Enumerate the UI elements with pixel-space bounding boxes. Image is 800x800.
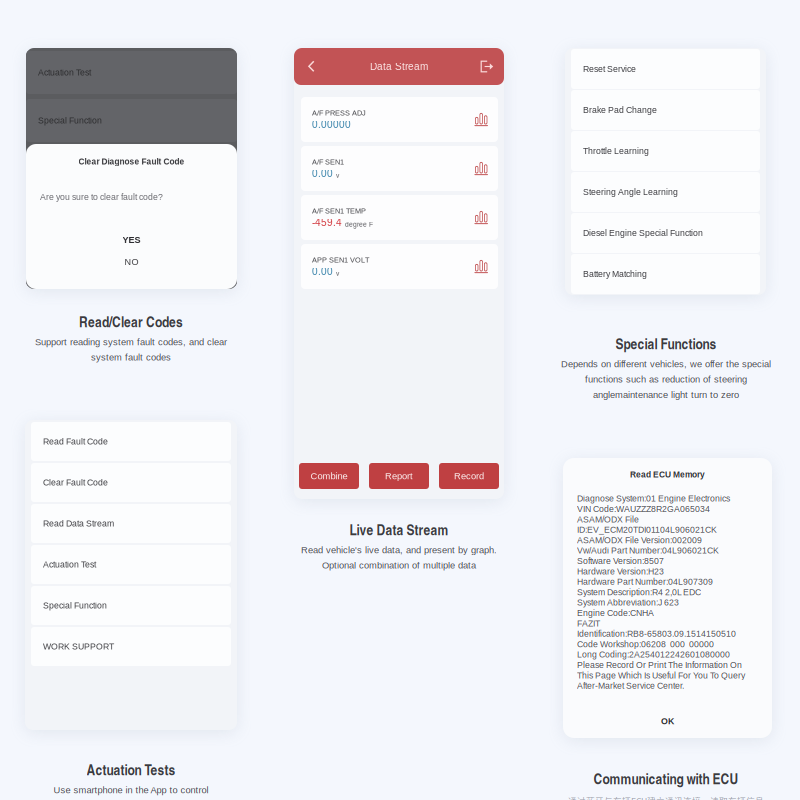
staticText: YES [122,235,140,245]
staticText: Report [385,471,413,481]
button[interactable]: A/F SEN1 [301,146,498,191]
staticText: Combine [310,471,347,481]
staticText: Special Function [43,601,107,610]
button[interactable]: Actuation Test [31,545,231,584]
staticText: 0.00000 [312,119,351,130]
button[interactable]: Diesel Engine Special Function [571,213,760,253]
button[interactable]: Actuation Test [26,51,237,94]
button[interactable]: YES [26,229,237,251]
staticText: v [336,172,339,179]
button[interactable]: Combine [299,463,359,489]
staticText: A/F SEN1 TEMP [312,207,366,215]
staticText: WORK SUPPORT [38,164,109,173]
button[interactable]: Back [294,48,328,85]
button[interactable]: Throttle Learning [571,131,760,171]
staticText: WORK SUPPORT [43,642,114,651]
button[interactable]: Read Fault Code [26,195,237,238]
button[interactable]: OK [563,709,772,733]
staticText: APP SEN1 VOLT [312,256,369,264]
staticText: Clear Fault Code [43,478,108,487]
staticText: Use smartphone in the App to control [53,785,208,795]
button[interactable]: WORK SUPPORT [31,627,231,666]
staticText: Hardware Version:H23 [577,566,664,576]
staticText: A/F SEN1 [312,158,344,166]
staticText: Long Coding:2A254012242601080000 [577,650,730,659]
button[interactable]: NO [26,251,237,273]
staticText: Diesel Engine Special Function [583,228,703,238]
staticText: degree F [345,221,373,228]
staticText: ASAM/ODX File Version:002009 [577,535,702,545]
staticText: After-Market Service Center. [577,681,684,691]
staticText: Identification:RB8-65803.09.1514150510 [577,629,736,639]
staticText: ASAM/ODX File [577,514,639,524]
staticText: Vw/Audi Part Number:04L906021CK [577,546,719,555]
staticText: Special Function [38,116,102,125]
button[interactable]: Report [369,463,429,489]
staticText: Reset Service [583,64,636,74]
button[interactable]: Special Function [26,99,237,142]
staticText: Depends on different vehicles, we offer … [561,359,771,369]
button[interactable]: Steering Angle Learning [571,172,760,212]
button[interactable]: Exit [470,48,504,85]
staticText: System Abbreviation:J 623 [577,598,679,607]
staticText: 通过蓝牙与车辆ECU建立通讯连接，读取车辆信息 [568,795,764,800]
staticText: Special Functions [615,333,716,354]
button[interactable]: Clear Fault Code [31,463,231,502]
staticText: anglemaintenance light turn to zero [593,390,739,400]
button[interactable]: A/F PRESS ADJ [301,97,498,142]
staticText: NO [124,257,138,267]
staticText: Steering Angle Learning [583,187,678,197]
button[interactable]: Reset Service [571,49,760,89]
staticText: Read Fault Code [43,437,108,446]
staticText: Please Record Or Print The Information O… [577,660,742,670]
staticText: Engine Code:CNHA [577,608,654,618]
staticText: -459.4 [312,217,342,228]
button[interactable]: Read Fault Code [31,422,231,461]
staticText: Hardware Part Number:04L907309 [577,577,713,587]
staticText: Code Workshop:06208 000 00000 [577,639,714,649]
staticText: Actuation Test [43,560,96,569]
staticText: Read ECU Memory [630,470,705,479]
staticText: Data Stream [370,61,428,72]
staticText: System Description:R4 2,0L EDC [577,587,701,597]
staticText: Read vehicle's live data, and present by… [301,545,497,555]
staticText: FAZIT [577,618,600,628]
button[interactable]: WORK SUPPORT [26,147,237,190]
staticText: Diagnose System:01 Engine Electronics [577,494,730,503]
button[interactable]: A/F SEN1 TEMP [301,195,498,240]
staticText: Live Data Stream [349,519,448,540]
staticText: Read Data Stream [43,519,114,528]
staticText: Software Version:8507 [577,556,664,566]
staticText: 0.00 [312,168,333,179]
staticText: Actuation Tests [86,759,175,780]
button[interactable]: Clear Fault Code [26,243,237,286]
staticText: Battery Matching [583,269,647,279]
staticText: ID:EV_ECM20TDI01104L906021CK [577,525,717,535]
button[interactable]: Record [439,463,499,489]
staticText: Optional combination of multiple data [322,560,476,570]
staticText: Support reading system fault codes, and … [35,337,227,347]
staticText: This Page Which Is Useful For You To Que… [577,670,745,680]
staticText: system fault codes [91,352,171,362]
staticText: Communicating with ECU [593,768,738,789]
staticText: Are you sure to clear fault code? [40,192,163,202]
button[interactable]: Read Data Stream [31,504,231,543]
staticText: Record [454,471,484,481]
staticText: 0.00 [312,266,333,277]
staticText: A/F PRESS ADJ [312,109,366,117]
staticText: VIN Code:WAUZZZ8R2GA065034 [577,504,710,514]
staticText: Actuation Test [38,68,91,77]
button[interactable]: APP SEN1 VOLT [301,244,498,289]
staticText: v [336,270,339,277]
staticText: functions such as reduction of steering [585,374,747,384]
staticText: Throttle Learning [583,146,649,156]
staticText: OK [661,716,674,726]
staticText: Read/Clear Codes [79,311,183,332]
staticText: Clear Diagnose Fault Code [78,157,184,166]
button[interactable]: Battery Matching [571,254,760,294]
staticText: Brake Pad Change [583,105,657,115]
button[interactable]: Special Function [31,586,231,625]
button[interactable]: Brake Pad Change [571,90,760,130]
